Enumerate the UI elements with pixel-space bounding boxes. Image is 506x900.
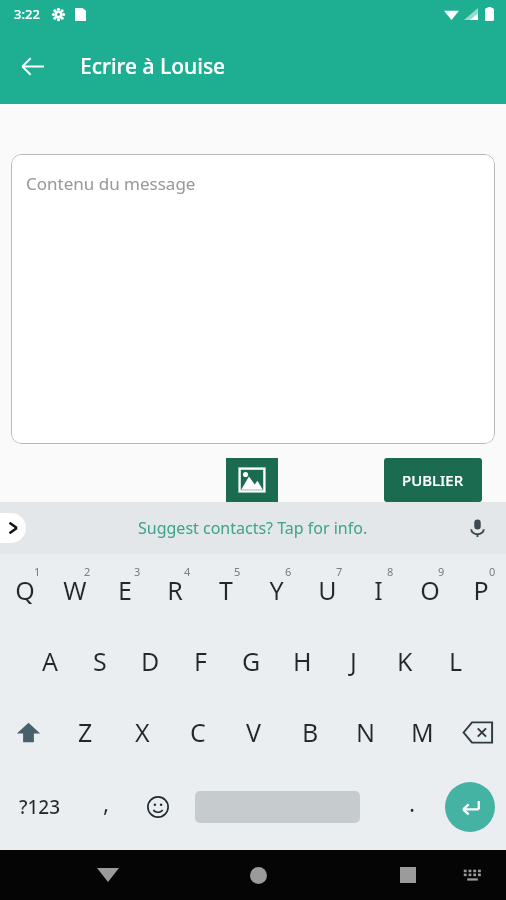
- button[interactable]: Recents: [384, 851, 432, 899]
- button[interactable]: C: [170, 696, 226, 768]
- button[interactable]: Hide keyboard: [84, 851, 132, 899]
- button[interactable]: Contenu du message: [11, 154, 495, 444]
- staticText: Contenu du message: [26, 172, 196, 195]
- staticText: .: [409, 787, 416, 818]
- button[interactable]: Suggest contacts? Tap for info.: [138, 517, 368, 539]
- staticText: 6: [285, 564, 292, 579]
- button[interactable]: Shift: [0, 696, 57, 768]
- button[interactable]: O: [404, 554, 455, 626]
- button[interactable]: N: [338, 696, 394, 768]
- button[interactable]: Z: [57, 696, 114, 768]
- staticText: E: [118, 573, 132, 607]
- button[interactable]: PUBLIER: [384, 458, 482, 502]
- button[interactable]: Switch keyboard: [450, 853, 494, 897]
- staticText: C: [190, 715, 206, 749]
- staticText: Z: [78, 715, 93, 749]
- button[interactable]: D: [125, 626, 175, 696]
- button[interactable]: J: [328, 626, 379, 696]
- button[interactable]: R: [150, 554, 200, 626]
- button[interactable]: H: [277, 626, 328, 696]
- button[interactable]: A: [25, 626, 75, 696]
- button[interactable]: U: [302, 554, 353, 626]
- staticText: G: [242, 644, 261, 678]
- staticText: 4: [184, 564, 191, 579]
- staticText: 8: [387, 564, 394, 579]
- button[interactable]: L: [430, 626, 481, 696]
- button[interactable]: G: [226, 626, 277, 696]
- button[interactable]: P: [455, 554, 506, 626]
- staticText: M: [411, 715, 434, 749]
- staticText: Q: [15, 573, 35, 607]
- staticText: O: [420, 573, 440, 607]
- staticText: K: [397, 644, 413, 678]
- button[interactable]: B: [282, 696, 338, 768]
- button[interactable]: F: [175, 626, 226, 696]
- staticText: 5: [234, 564, 241, 579]
- staticText: PUBLIER: [402, 470, 464, 490]
- button[interactable]: Y: [251, 554, 302, 626]
- staticText: Ecrire à Louise: [80, 52, 226, 81]
- button[interactable]: X: [114, 696, 170, 768]
- button[interactable]: Emoji: [132, 768, 184, 846]
- staticText: D: [141, 644, 160, 678]
- staticText: T: [219, 573, 233, 607]
- staticText: 3: [134, 564, 141, 579]
- staticText: ,: [103, 787, 110, 818]
- button[interactable]: Home: [234, 851, 282, 899]
- staticText: 0: [489, 564, 496, 579]
- button[interactable]: Q: [0, 554, 50, 626]
- button[interactable]: W: [50, 554, 100, 626]
- button[interactable]: Voice input: [460, 511, 494, 545]
- button[interactable]: I: [353, 554, 404, 626]
- staticText: R: [167, 573, 183, 607]
- staticText: 1: [34, 564, 41, 579]
- button[interactable]: Back: [8, 42, 56, 90]
- staticText: F: [194, 644, 207, 678]
- button[interactable]: Attach image: [226, 458, 278, 502]
- staticText: 3:22: [14, 5, 40, 23]
- button[interactable]: M: [394, 696, 450, 768]
- staticText: 2: [84, 564, 91, 579]
- button[interactable]: ,: [80, 768, 132, 846]
- button[interactable]: S: [75, 626, 125, 696]
- staticText: J: [350, 644, 357, 678]
- button[interactable]: .: [390, 768, 434, 846]
- staticText: B: [302, 715, 319, 749]
- staticText: 9: [438, 564, 445, 579]
- button[interactable]: K: [379, 626, 430, 696]
- button[interactable]: T: [200, 554, 251, 626]
- staticText: A: [42, 644, 58, 678]
- staticText: I: [374, 573, 383, 607]
- button[interactable]: E: [100, 554, 150, 626]
- button[interactable]: ?123: [0, 768, 80, 846]
- staticText: X: [135, 715, 150, 749]
- button[interactable]: Enter: [445, 782, 495, 832]
- button[interactable]: V: [226, 696, 282, 768]
- button[interactable]: Expand suggestions: [0, 513, 26, 543]
- staticText: S: [93, 644, 107, 678]
- staticText: L: [449, 644, 463, 678]
- staticText: P: [473, 573, 489, 607]
- staticText: ?123: [19, 794, 61, 820]
- staticText: H: [293, 644, 312, 678]
- staticText: V: [246, 715, 262, 749]
- staticText: Y: [269, 573, 284, 607]
- staticText: 7: [336, 564, 343, 579]
- staticText: U: [318, 573, 337, 607]
- staticText: W: [63, 573, 87, 607]
- staticText: N: [356, 715, 376, 749]
- button[interactable]: Backspace: [450, 696, 506, 768]
